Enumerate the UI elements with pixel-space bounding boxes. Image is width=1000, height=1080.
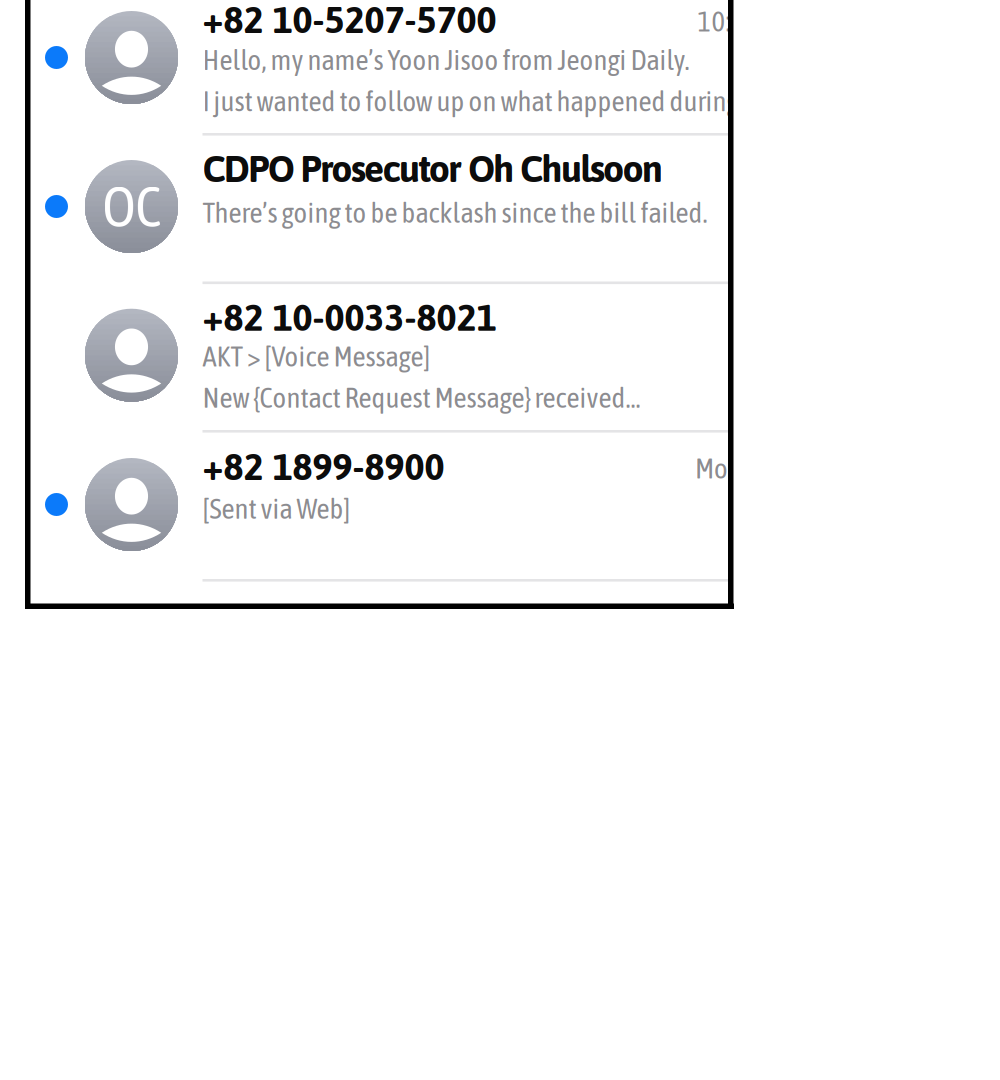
staticText: I just wanted to follow up on what happe… <box>202 84 777 117</box>
button[interactable]: +82 10-5207-5700 <box>30 0 1000 133</box>
button[interactable]: OC <box>30 133 1000 281</box>
staticText: AKT > [Voice Message] <box>202 340 430 373</box>
staticText: [Sent via Web] <box>202 492 350 525</box>
button[interactable]: +82 10-0033-8021 <box>30 281 1000 430</box>
staticText: +82 10-5207-5700 <box>202 0 496 41</box>
staticText: Hello, my name’s Yoon Jisoo from Jeongi … <box>202 43 689 76</box>
staticText: Monday <box>695 451 781 484</box>
button[interactable]: +82 1899-8900 <box>30 430 1000 579</box>
staticText: +82 1899-8900 <box>202 445 444 488</box>
staticText: There’s going to be backlash since the b… <box>202 196 707 229</box>
staticText: 10:42 <box>697 4 758 37</box>
staticText: +82 10-0033-8021 <box>202 296 496 339</box>
staticText: New {Contact Request Message} received..… <box>202 381 640 414</box>
staticText: CDPO Prosecutor Oh Chulsoon <box>202 147 663 190</box>
staticText: OC <box>102 174 160 239</box>
